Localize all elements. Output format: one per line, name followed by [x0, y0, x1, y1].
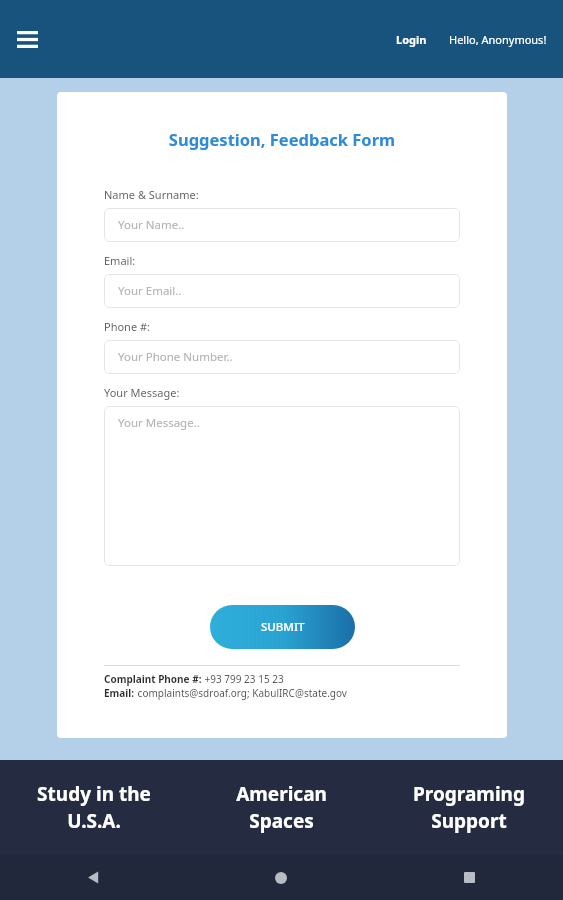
button[interactable]: Study in the: [0, 760, 187, 855]
staticText: Phone #:: [104, 319, 151, 334]
staticText: Your Message..: [118, 415, 200, 431]
staticText: Complaint Phone #:: [104, 672, 202, 686]
staticText: American: [236, 781, 327, 807]
button[interactable]: Your Name..: [104, 208, 460, 242]
button[interactable]: Login: [392, 28, 431, 51]
button[interactable]: Hello, Anonymous!: [447, 28, 549, 51]
button[interactable]: Home: [187, 855, 375, 900]
button[interactable]: SUBMIT: [210, 605, 355, 649]
button[interactable]: Back: [0, 855, 187, 900]
staticText: U.S.A.: [67, 808, 121, 834]
button[interactable]: Your Phone Number..: [104, 340, 460, 374]
staticText: Study in the: [37, 781, 151, 807]
staticText: Your Message:: [104, 385, 180, 400]
staticText: Name & Surname:: [104, 187, 199, 202]
staticText: Suggestion, Feedback Form: [57, 128, 507, 150]
staticText: complaints@sdroaf.org; KabulIRC@state.go…: [135, 686, 347, 700]
staticText: +93 799 23 15 23: [202, 672, 284, 686]
staticText: Your Phone Number..: [118, 349, 233, 365]
button[interactable]: American: [187, 760, 375, 855]
staticText: Support: [431, 808, 507, 834]
button[interactable]: Programing: [375, 760, 563, 855]
staticText: Email:: [104, 686, 135, 700]
staticText: Hello, Anonymous!: [449, 32, 547, 47]
staticText: Your Name..: [118, 217, 185, 233]
button[interactable]: Open navigation menu: [9, 21, 45, 57]
staticText: Your Email..: [118, 283, 182, 299]
staticText: Login: [396, 32, 427, 47]
staticText: Email:: [104, 253, 136, 268]
staticText: Programing: [413, 781, 525, 807]
button[interactable]: Your Message..: [104, 406, 460, 566]
staticText: SUBMIT: [261, 619, 305, 635]
staticText: Spaces: [249, 808, 314, 834]
button[interactable]: Recent apps: [375, 855, 563, 900]
button[interactable]: Your Email..: [104, 274, 460, 308]
